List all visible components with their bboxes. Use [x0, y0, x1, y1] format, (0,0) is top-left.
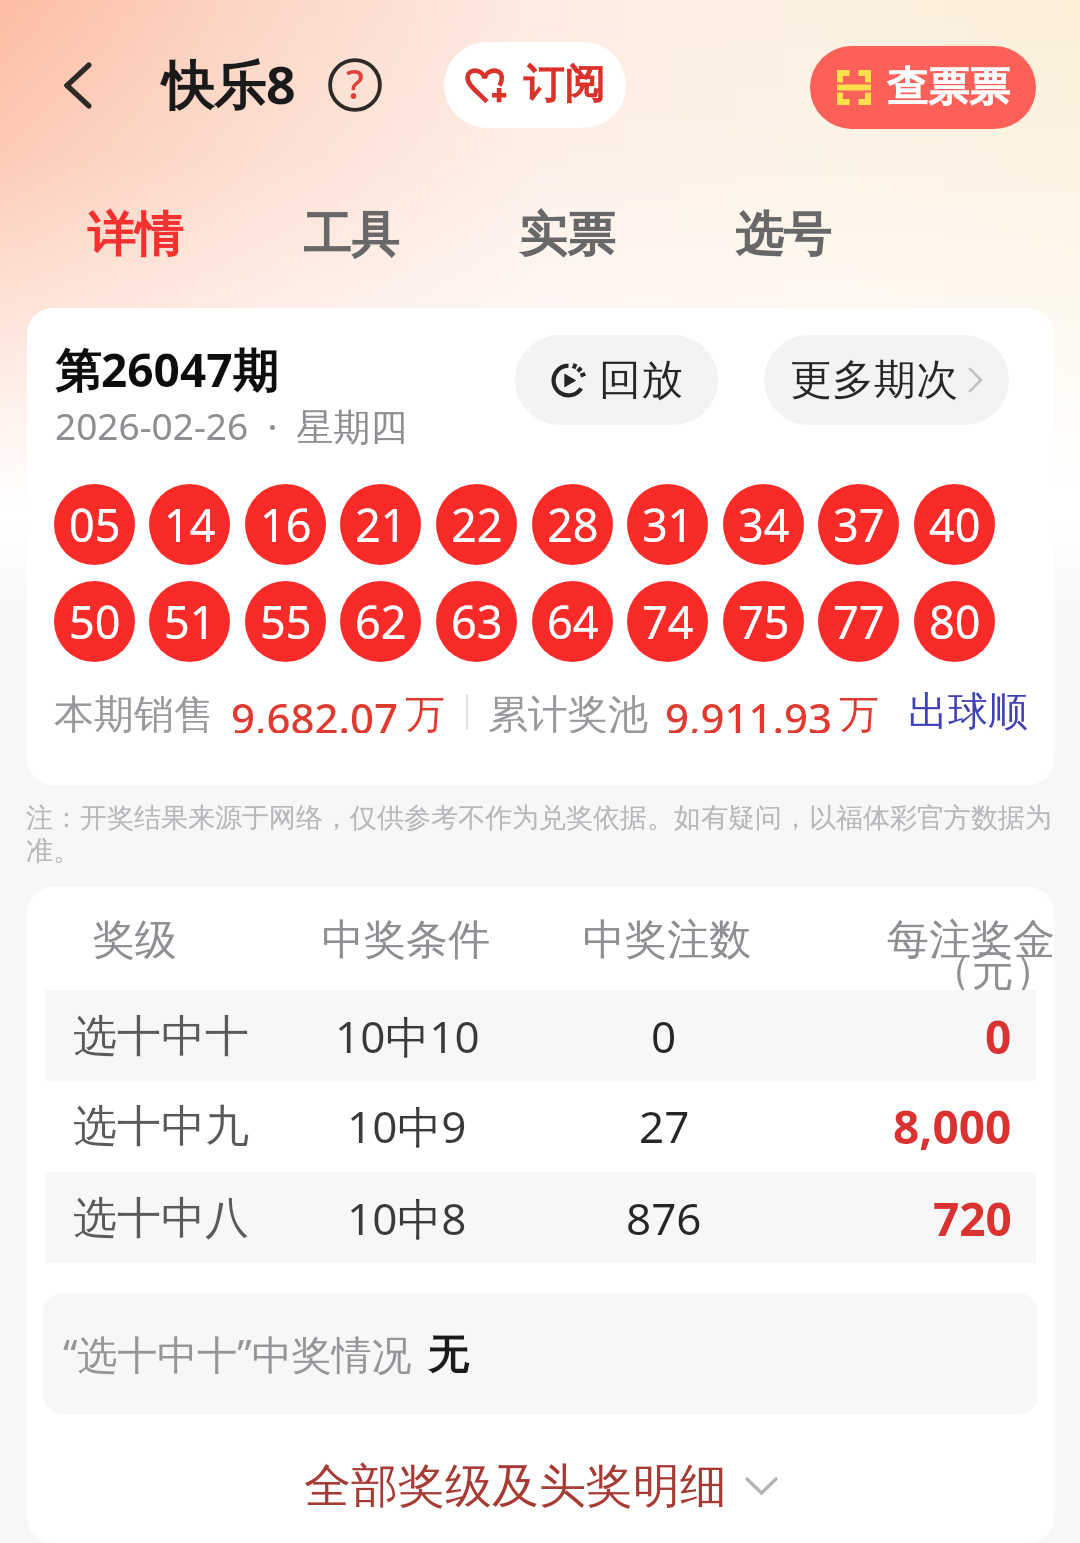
- staticText: 实票: [519, 205, 615, 265]
- staticText: 51: [164, 591, 216, 652]
- staticText: 选十中九: [73, 1099, 249, 1154]
- staticText: 55: [260, 591, 312, 652]
- staticText: “选十中十”中奖情况: [63, 1326, 412, 1381]
- staticText: 选十中十: [73, 1009, 249, 1064]
- staticText: 50: [69, 591, 121, 652]
- staticText: 选十中八: [73, 1191, 249, 1246]
- staticText: 万: [405, 689, 445, 733]
- staticText: 21: [355, 494, 407, 555]
- staticText: 0: [985, 1005, 1012, 1068]
- staticText: 28: [547, 494, 599, 555]
- staticText: 74: [642, 591, 694, 652]
- button[interactable]: 工具: [276, 190, 426, 280]
- staticText: 更多期次: [790, 354, 958, 407]
- staticText: 详情: [87, 205, 183, 265]
- button[interactable]: 回放: [515, 335, 718, 425]
- staticText: 64: [547, 591, 599, 652]
- button[interactable]: 出球顺: [898, 683, 1038, 739]
- staticText: 10中9: [347, 1096, 467, 1156]
- staticText: 22: [451, 494, 503, 555]
- staticText: 奖级: [93, 914, 177, 967]
- staticText: 63: [451, 591, 503, 652]
- staticText: 9,682.07: [231, 689, 399, 733]
- staticText: 40: [929, 494, 981, 555]
- staticText: 选号: [735, 205, 831, 265]
- staticText: 77: [833, 591, 885, 652]
- staticText: 9,911.93: [665, 689, 833, 733]
- staticText: 中奖条件: [322, 914, 490, 967]
- staticText: 10中10: [335, 1006, 480, 1066]
- staticText: 累计奖池: [488, 689, 648, 733]
- button[interactable]: 选十中十: [27, 990, 1054, 1081]
- staticText: 10中8: [347, 1188, 467, 1248]
- staticText: 876: [626, 1188, 702, 1248]
- staticText: 62: [355, 591, 407, 652]
- staticText: 全部奖级及头奖明细: [304, 1457, 727, 1516]
- button[interactable]: Help: [328, 58, 382, 112]
- button[interactable]: Back: [50, 45, 106, 125]
- staticText: 中奖注数: [583, 914, 751, 967]
- staticText: 80: [929, 591, 981, 652]
- button[interactable]: 更多期次: [764, 335, 1009, 425]
- button[interactable]: 选十中九: [27, 1080, 1054, 1171]
- staticText: 75: [738, 591, 790, 652]
- staticText: 本期销售: [54, 689, 214, 733]
- staticText: 注：开奖结果来源于网络，仅供参考不作为兑奖依据。如有疑问，以福体彩官方数据为准。: [26, 801, 1055, 868]
- staticText: 16: [260, 494, 312, 555]
- staticText: 无: [428, 1329, 468, 1379]
- staticText: 查票票: [887, 62, 1010, 114]
- staticText: 万: [839, 689, 879, 733]
- button[interactable]: 实票: [492, 190, 642, 280]
- staticText: 出球顺: [908, 686, 1028, 736]
- staticText: 34: [738, 494, 790, 555]
- button[interactable]: “选十中十”中奖情况: [43, 1293, 1038, 1414]
- staticText: 第26047期: [55, 338, 279, 401]
- button[interactable]: 选十中八: [27, 1172, 1054, 1263]
- button[interactable]: 详情: [60, 190, 210, 280]
- button[interactable]: 查票票: [810, 46, 1036, 129]
- staticText: 8,000: [893, 1095, 1012, 1158]
- button[interactable]: 全部奖级及头奖明细: [27, 1436, 1054, 1536]
- staticText: 回放: [599, 354, 683, 407]
- staticText: 720: [933, 1187, 1012, 1250]
- staticText: 14: [164, 494, 216, 555]
- staticText: 2026-02-26 · 星期四: [55, 400, 408, 451]
- button[interactable]: 订阅: [444, 42, 626, 128]
- staticText: （元）: [930, 945, 1054, 998]
- staticText: 31: [642, 494, 694, 555]
- staticText: 37: [833, 494, 885, 555]
- staticText: 每注奖金: [887, 914, 1054, 967]
- staticText: 订阅: [523, 59, 605, 111]
- staticText: 工具: [303, 205, 399, 265]
- staticText: 27: [639, 1096, 690, 1156]
- staticText: 0: [651, 1006, 677, 1066]
- staticText: ?: [346, 56, 364, 110]
- staticText: 快乐8: [162, 48, 296, 119]
- button[interactable]: 选号: [708, 190, 858, 280]
- staticText: 05: [69, 494, 121, 555]
